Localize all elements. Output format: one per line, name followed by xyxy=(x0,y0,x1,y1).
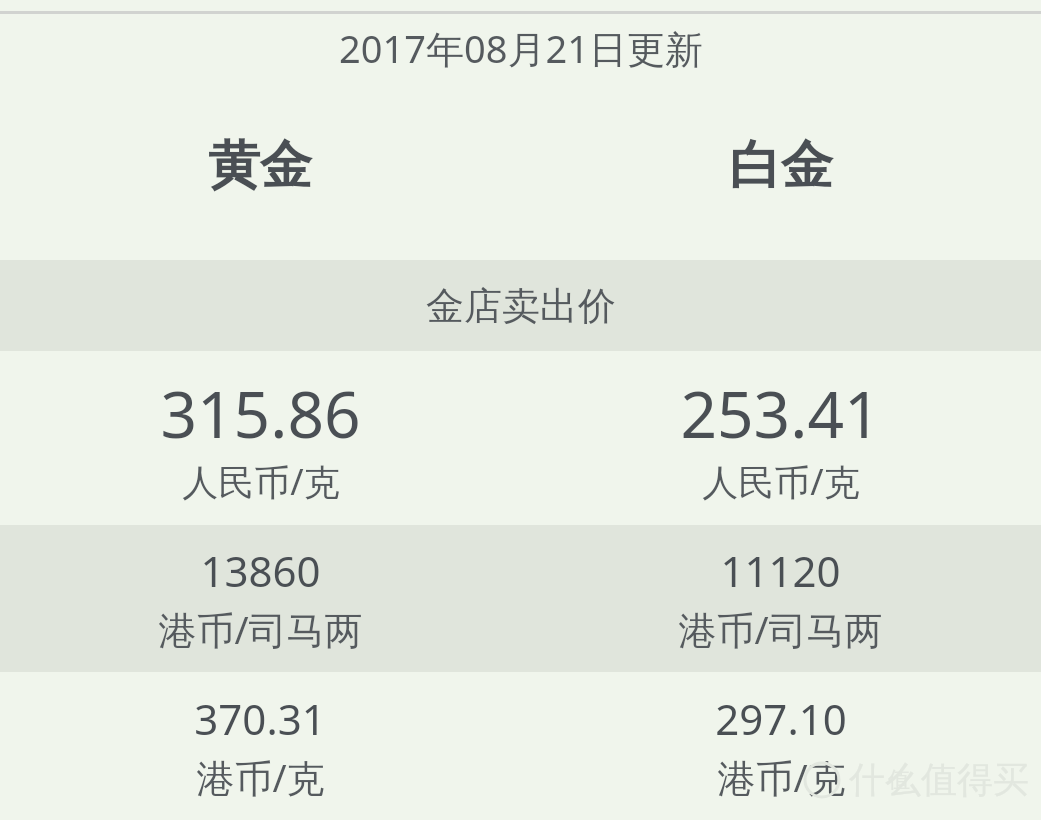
button[interactable]: 13860 xyxy=(0,525,1041,672)
staticText: 11120 xyxy=(720,542,841,599)
staticText: 港币/司马两 xyxy=(158,603,363,655)
staticText: 人民币/克 xyxy=(182,457,340,506)
staticText: 315.86 xyxy=(160,370,361,457)
other: 什么值得买 watermark xyxy=(803,757,1029,802)
staticText: 金店卖出价 xyxy=(426,282,616,330)
staticText: 2017年08月21日更新 xyxy=(339,22,703,74)
staticText: 港币/司马两 xyxy=(678,603,883,655)
staticText: 港币/克 xyxy=(196,751,325,803)
button[interactable]: 2017年08月21日更新 xyxy=(0,14,1041,71)
staticText: 白金 xyxy=(729,133,833,199)
staticText: 值 xyxy=(888,766,910,794)
staticText: 253.41 xyxy=(680,370,881,457)
button[interactable]: 370.31 xyxy=(0,672,1041,820)
button[interactable]: 315.86 xyxy=(0,351,1041,525)
staticText: 13860 xyxy=(200,542,321,599)
staticText: 370.31 xyxy=(194,690,326,747)
staticText: 什么值得买 xyxy=(849,757,1029,802)
staticText: 297.10 xyxy=(715,690,847,747)
staticText: 人民币/克 xyxy=(702,457,860,506)
button[interactable]: 金店卖出价 xyxy=(0,260,1041,351)
staticText: 港币/克 xyxy=(717,751,846,803)
staticText: 黄金 xyxy=(208,133,312,199)
